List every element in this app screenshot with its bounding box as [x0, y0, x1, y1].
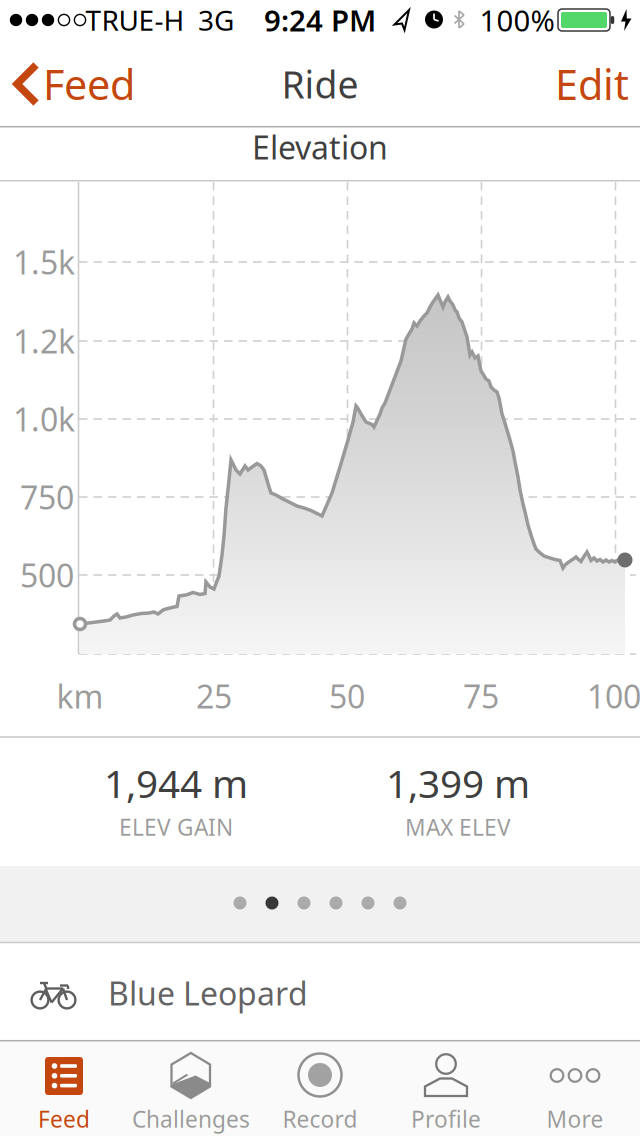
- staticText: 1.0k: [13, 398, 75, 440]
- staticText: 100%: [479, 0, 554, 39]
- staticText: Record: [282, 1104, 357, 1134]
- staticText: Elevation: [252, 126, 388, 168]
- button[interactable]: Challenges: [128, 1040, 256, 1136]
- staticText: TRUE-H: [85, 1, 184, 39]
- button[interactable]: Edit: [537, 41, 640, 127]
- staticText: 100: [587, 675, 640, 717]
- staticText: 50: [329, 675, 365, 717]
- staticText: Feed: [38, 1104, 90, 1134]
- staticText: Challenges: [132, 1104, 250, 1134]
- staticText: 500: [20, 554, 74, 596]
- staticText: 750: [20, 476, 74, 518]
- button[interactable]: Feed: [0, 41, 160, 127]
- button[interactable]: More: [511, 1040, 639, 1136]
- button[interactable]: Feed: [0, 1040, 128, 1136]
- staticText: ELEV GAIN: [119, 812, 233, 842]
- staticText: 1,944 m: [104, 757, 248, 809]
- staticText: Feed: [43, 57, 135, 111]
- staticText: 1.2k: [13, 320, 75, 362]
- staticText: 25: [196, 675, 232, 717]
- staticText: Blue Leopard: [108, 972, 308, 1014]
- button[interactable]: Profile: [383, 1040, 511, 1136]
- button[interactable]: Record: [256, 1040, 384, 1136]
- staticText: Ride: [281, 59, 358, 109]
- staticText: km: [56, 675, 103, 717]
- staticText: 1,399 m: [386, 757, 530, 809]
- staticText: Profile: [411, 1104, 481, 1134]
- staticText: 9:24 PM: [264, 0, 376, 39]
- staticText: More: [546, 1104, 603, 1134]
- staticText: 3G: [198, 1, 234, 39]
- staticText: Edit: [555, 57, 629, 111]
- staticText: 1.5k: [13, 241, 75, 283]
- staticText: MAX ELEV: [405, 812, 511, 842]
- button[interactable]: Blue Leopard: [0, 944, 640, 1039]
- staticText: 75: [463, 675, 499, 717]
